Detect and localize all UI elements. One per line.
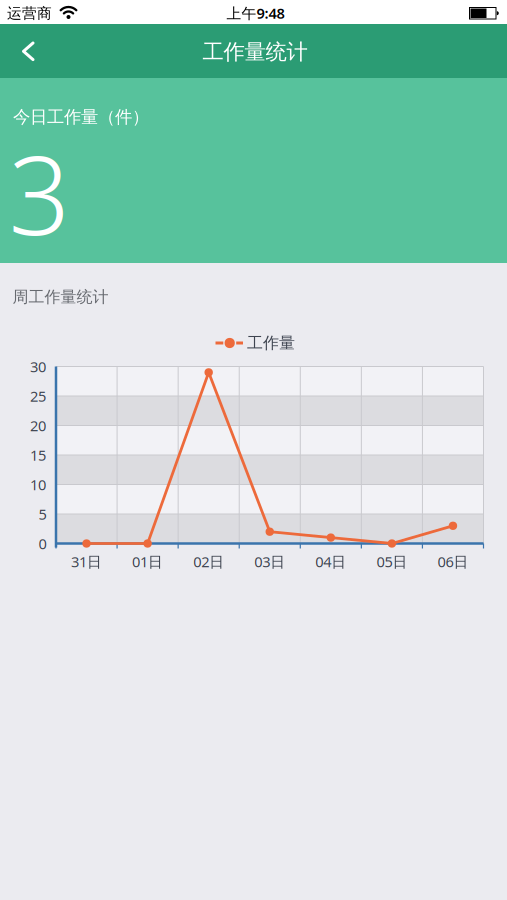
staticText: 03日 — [254, 552, 285, 571]
staticText: 0 — [38, 534, 46, 553]
staticText: 30 — [30, 357, 46, 376]
button[interactable]: Back — [0, 24, 56, 78]
staticText: 15 — [30, 445, 46, 465]
staticText: 01日 — [132, 552, 163, 571]
staticText: 20 — [30, 416, 46, 435]
staticText: 05日 — [376, 552, 407, 571]
staticText: 周工作量统计 — [12, 287, 108, 307]
staticText: 5 — [38, 504, 46, 524]
staticText: 3 — [8, 121, 70, 265]
staticText: 工作量 — [247, 333, 295, 353]
staticText: 上午9:48 — [226, 3, 284, 23]
staticText: 10 — [30, 475, 46, 494]
staticText: 工作量统计 — [202, 39, 307, 65]
staticText: 06日 — [437, 552, 468, 571]
staticText: 31日 — [71, 552, 102, 571]
staticText: 25 — [30, 386, 46, 406]
staticText: 02日 — [193, 552, 224, 571]
staticText: 04日 — [315, 552, 346, 571]
staticText: 今日工作量（件） — [13, 106, 149, 128]
staticText: 运营商 — [7, 4, 52, 22]
